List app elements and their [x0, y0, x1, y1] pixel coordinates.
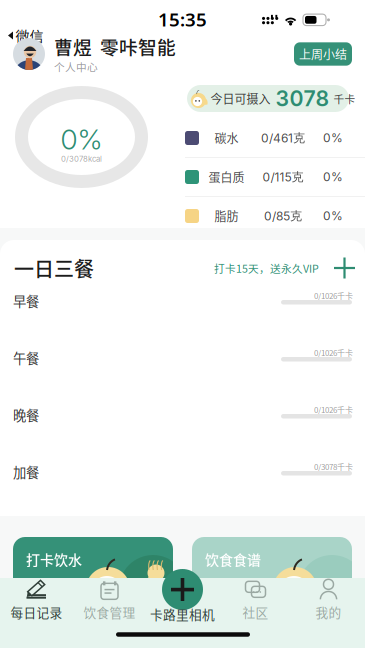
- button[interactable]: 晚餐: [0, 402, 365, 459]
- staticText: 我的: [315, 603, 341, 621]
- staticText: 0%: [323, 131, 343, 145]
- staticText: 加餐: [13, 462, 39, 481]
- staticText: 今日可摄入: [210, 90, 270, 107]
- staticText: 0/3078千卡: [314, 461, 353, 472]
- staticText: 卡路里相机: [150, 605, 215, 623]
- staticText: 0/1026千卡: [314, 290, 353, 301]
- button[interactable]: 上周小结: [294, 42, 352, 66]
- staticText: 0%: [323, 170, 343, 184]
- staticText: 0/1026千卡: [314, 347, 353, 358]
- staticText: 碳水: [214, 129, 238, 147]
- staticText: 午餐: [13, 348, 39, 367]
- button[interactable]: 加餐: [0, 459, 365, 516]
- staticText: 曹煜 零咔智能: [54, 33, 176, 60]
- staticText: 每日记录: [10, 603, 62, 621]
- button[interactable]: 卡路里相机: [162, 569, 203, 610]
- button[interactable]: 添加: [319, 257, 355, 278]
- staticText: 0/3078kcal: [61, 154, 102, 164]
- staticText: 0/85克: [264, 208, 302, 223]
- button[interactable]: 早餐: [0, 288, 365, 345]
- staticText: 15:35: [158, 7, 207, 32]
- button[interactable]: 打卡饮水: [13, 537, 173, 599]
- button[interactable]: 饮食管理: [73, 578, 146, 622]
- staticText: 上周小结: [299, 45, 347, 63]
- staticText: 早餐: [13, 291, 39, 310]
- button[interactable]: 饮食食谱: [192, 537, 352, 599]
- staticText: 饮食食谱: [205, 549, 261, 569]
- staticText: 一日三餐: [14, 253, 94, 282]
- staticText: 0/115克: [262, 169, 303, 184]
- staticText: 饮食管理: [83, 603, 135, 621]
- staticText: 个人中心: [54, 59, 98, 74]
- staticText: 晚餐: [13, 405, 39, 424]
- staticText: 打卡饮水: [26, 549, 82, 569]
- button[interactable]: 卡路里相机: [146, 607, 219, 621]
- staticText: 0%: [323, 209, 343, 223]
- staticText: 脂肪: [214, 207, 238, 225]
- button[interactable]: 午餐: [0, 345, 365, 402]
- staticText: 打卡15天，送永久VIP: [214, 260, 319, 276]
- staticText: 千卡: [333, 91, 355, 106]
- staticText: 0/1026千卡: [314, 404, 353, 415]
- staticText: 0%: [60, 122, 102, 156]
- button[interactable]: 每日记录: [0, 578, 73, 622]
- staticText: 社区: [242, 603, 268, 621]
- staticText: 0/461克: [261, 130, 305, 145]
- staticText: 微信: [15, 25, 43, 46]
- button[interactable]: 我的: [292, 578, 365, 622]
- button[interactable]: 社区: [219, 578, 292, 622]
- staticText: 3078: [275, 86, 329, 111]
- staticText: 蛋白质: [208, 168, 244, 186]
